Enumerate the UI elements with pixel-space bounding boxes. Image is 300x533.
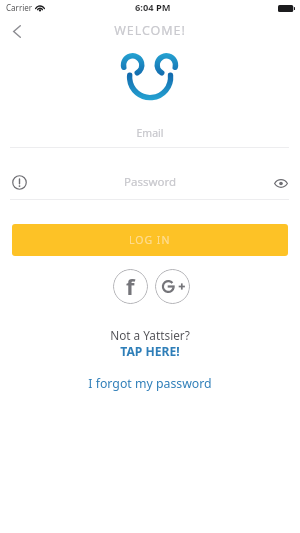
staticText: Not a Yattsier? — [0, 327, 300, 343]
button[interactable]: Sign in with Google Plus — [155, 269, 190, 304]
button[interactable]: Show password — [268, 171, 293, 196]
button[interactable]: I forgot my password — [82, 373, 218, 394]
button[interactable]: LOG IN — [12, 224, 288, 256]
staticText: Carrier — [6, 2, 33, 13]
button[interactable]: Password error info — [7, 170, 32, 195]
staticText: f — [126, 271, 135, 301]
staticText: LOG IN — [129, 233, 171, 247]
staticText: Email — [0, 126, 300, 140]
button[interactable]: TAP HERE! — [114, 341, 186, 361]
button[interactable]: Back — [2, 16, 32, 46]
staticText: Password — [0, 174, 300, 190]
staticText: WELCOME! — [0, 22, 300, 39]
button[interactable]: Sign in with Facebook — [113, 269, 148, 304]
staticText: 6:04 PM — [135, 1, 171, 14]
